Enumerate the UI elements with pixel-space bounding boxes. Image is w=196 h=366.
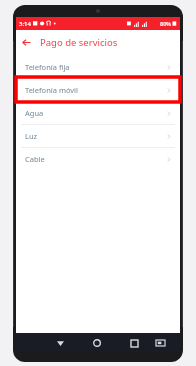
staticText: Pago de servicios <box>40 36 118 49</box>
button[interactable]: Agua <box>16 102 180 124</box>
staticText: Luz <box>25 131 38 141</box>
staticText: 80% <box>160 20 171 27</box>
button[interactable]: Luz <box>16 125 180 147</box>
button[interactable]: Back <box>52 335 68 351</box>
staticText: 3:14 <box>19 20 31 28</box>
button[interactable]: Recent apps <box>126 335 142 351</box>
staticText: Cable <box>25 154 45 164</box>
button[interactable]: Telefonía móvil <box>16 79 180 101</box>
staticText: Telefonía fija <box>25 62 70 72</box>
button[interactable]: Switch keyboard <box>152 335 168 351</box>
staticText: Agua <box>25 108 44 118</box>
button[interactable]: Cable <box>16 148 180 170</box>
button[interactable]: Telefonía fija <box>16 56 180 78</box>
button[interactable]: Back <box>16 32 36 52</box>
staticText: Telefonía móvil <box>25 85 78 95</box>
button[interactable]: Home <box>89 335 105 351</box>
